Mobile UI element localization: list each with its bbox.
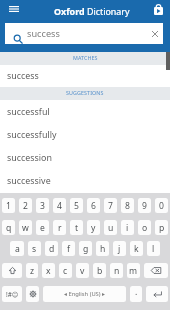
button[interactable]: f bbox=[62, 241, 75, 256]
staticText: g bbox=[83, 243, 89, 255]
staticText: m bbox=[129, 265, 138, 277]
button[interactable]: d bbox=[45, 241, 58, 256]
button[interactable]: q bbox=[2, 220, 15, 235]
staticText: 3 bbox=[40, 200, 45, 212]
staticText: . bbox=[135, 286, 138, 298]
staticText: o bbox=[142, 222, 148, 234]
staticText: b bbox=[97, 265, 103, 277]
staticText: MATCHES bbox=[73, 54, 98, 61]
staticText: j bbox=[118, 243, 121, 255]
staticText: d bbox=[49, 243, 55, 255]
staticText: p bbox=[159, 222, 165, 234]
button[interactable]: Settings bbox=[26, 286, 39, 302]
button[interactable]: 6 bbox=[87, 198, 100, 213]
button[interactable]: succession bbox=[0, 146, 170, 169]
staticText: a bbox=[15, 243, 20, 255]
button[interactable]: o bbox=[138, 220, 151, 235]
button[interactable]: successful bbox=[0, 100, 170, 123]
staticText: l bbox=[152, 243, 155, 255]
staticText: n bbox=[114, 265, 120, 277]
button[interactable]: v bbox=[76, 263, 89, 278]
button[interactable]: successfully bbox=[0, 123, 170, 146]
button[interactable]: w bbox=[19, 220, 32, 235]
staticText: !#☺ bbox=[6, 290, 19, 299]
staticText: ◂ English (US) ▸ bbox=[64, 290, 105, 298]
staticText: t bbox=[75, 222, 79, 234]
button[interactable]: Symbols bbox=[2, 286, 22, 302]
staticText: success bbox=[7, 69, 39, 81]
button[interactable]: success bbox=[0, 65, 170, 87]
staticText: c bbox=[63, 265, 68, 277]
button[interactable]: Period bbox=[130, 286, 142, 302]
button[interactable]: h bbox=[96, 241, 109, 256]
staticText: 4 bbox=[57, 200, 62, 212]
button[interactable]: s bbox=[28, 241, 41, 256]
staticText: 9 bbox=[142, 200, 147, 212]
staticText: i bbox=[126, 222, 129, 234]
button[interactable]: l bbox=[147, 241, 160, 256]
staticText: successfully bbox=[7, 128, 57, 140]
button[interactable]: m bbox=[127, 263, 140, 278]
staticText: SUGGESTIONS bbox=[66, 89, 104, 96]
button[interactable]: 1 bbox=[2, 198, 15, 213]
button[interactable]: Menu bbox=[4, 0, 23, 17]
staticText: 6 bbox=[91, 200, 96, 212]
button[interactable]: b bbox=[93, 263, 106, 278]
staticText: z bbox=[30, 265, 35, 277]
button[interactable]: x bbox=[42, 263, 55, 278]
staticText: 5 bbox=[74, 200, 79, 212]
button[interactable]: 5 bbox=[70, 198, 83, 213]
button[interactable]: j bbox=[113, 241, 126, 256]
button[interactable]: c bbox=[59, 263, 72, 278]
staticText: 0 bbox=[159, 200, 164, 212]
staticText: 8 bbox=[125, 200, 130, 212]
staticText: q bbox=[6, 222, 12, 234]
staticText: successful bbox=[7, 105, 50, 117]
button[interactable]: 9 bbox=[138, 198, 151, 213]
staticText: r bbox=[58, 222, 62, 234]
button[interactable]: Google Play Store bbox=[149, 0, 168, 18]
button[interactable]: 4 bbox=[53, 198, 66, 213]
button[interactable]: i bbox=[121, 220, 134, 235]
staticText: x bbox=[46, 265, 51, 277]
staticText: u bbox=[108, 222, 114, 234]
staticText: h bbox=[100, 243, 106, 255]
button[interactable]: 8 bbox=[121, 198, 134, 213]
staticText: successive bbox=[7, 174, 51, 186]
button[interactable]: Shift bbox=[2, 263, 22, 278]
button[interactable]: a bbox=[10, 241, 24, 256]
button[interactable]: ◂ English (US) ▸ bbox=[43, 286, 126, 302]
button[interactable]: k bbox=[130, 241, 143, 256]
button[interactable]: Enter bbox=[146, 286, 168, 302]
staticText: e bbox=[40, 222, 45, 234]
button[interactable]: z bbox=[26, 263, 38, 278]
button[interactable]: p bbox=[155, 220, 168, 235]
button[interactable]: Clear search bbox=[149, 28, 161, 40]
staticText: v bbox=[80, 265, 85, 277]
button[interactable]: Backspace bbox=[144, 263, 168, 278]
staticText: 7 bbox=[108, 200, 113, 212]
staticText: Oxford Dictionary bbox=[54, 5, 130, 17]
button[interactable]: u bbox=[104, 220, 117, 235]
button[interactable]: successive bbox=[0, 169, 170, 192]
button[interactable]: success bbox=[5, 23, 163, 44]
button[interactable]: e bbox=[36, 220, 49, 235]
button[interactable]: g bbox=[79, 241, 92, 256]
staticText: s bbox=[32, 243, 37, 255]
button[interactable]: n bbox=[110, 263, 123, 278]
staticText: succession bbox=[7, 151, 52, 163]
staticText: w bbox=[22, 222, 29, 234]
staticText: k bbox=[134, 243, 139, 255]
button[interactable]: 7 bbox=[104, 198, 117, 213]
staticText: y bbox=[91, 222, 96, 234]
staticText: success bbox=[27, 27, 60, 40]
button[interactable]: y bbox=[87, 220, 100, 235]
button[interactable]: 2 bbox=[19, 198, 32, 213]
button[interactable]: 0 bbox=[155, 198, 168, 213]
button[interactable]: 3 bbox=[36, 198, 49, 213]
staticText: 2 bbox=[23, 200, 28, 212]
button[interactable]: t bbox=[70, 220, 83, 235]
button[interactable]: r bbox=[53, 220, 66, 235]
staticText: 1 bbox=[6, 200, 11, 212]
staticText: f bbox=[67, 243, 70, 255]
